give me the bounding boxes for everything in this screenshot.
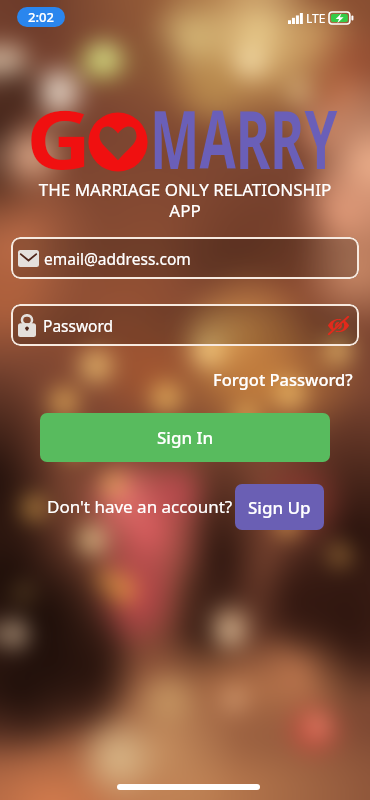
staticText: email@address.com: [44, 248, 191, 269]
staticText: Sign Up: [248, 496, 311, 519]
staticText: 2:02: [28, 8, 54, 26]
other: Show password: [327, 316, 350, 335]
button[interactable]: Forgot Password?: [211, 366, 355, 392]
staticText: Forgot Password?: [213, 368, 353, 390]
button[interactable]: Sign Up: [235, 484, 324, 530]
staticText: THE MARRIAGE ONLY RELATIONSHIP APP: [0, 178, 370, 222]
button[interactable]: Password: [11, 304, 359, 346]
staticText: G: [26, 83, 91, 192]
staticText: MARRY: [150, 83, 337, 192]
staticText: Sign In: [157, 426, 214, 449]
button[interactable]: email@address.com: [11, 237, 359, 279]
staticText: LTE: [306, 10, 326, 26]
staticText: Don't have an account?: [47, 495, 233, 518]
button[interactable]: Don't have an account?: [46, 494, 234, 519]
staticText: Password: [43, 315, 114, 336]
button[interactable]: Sign In: [40, 413, 330, 462]
